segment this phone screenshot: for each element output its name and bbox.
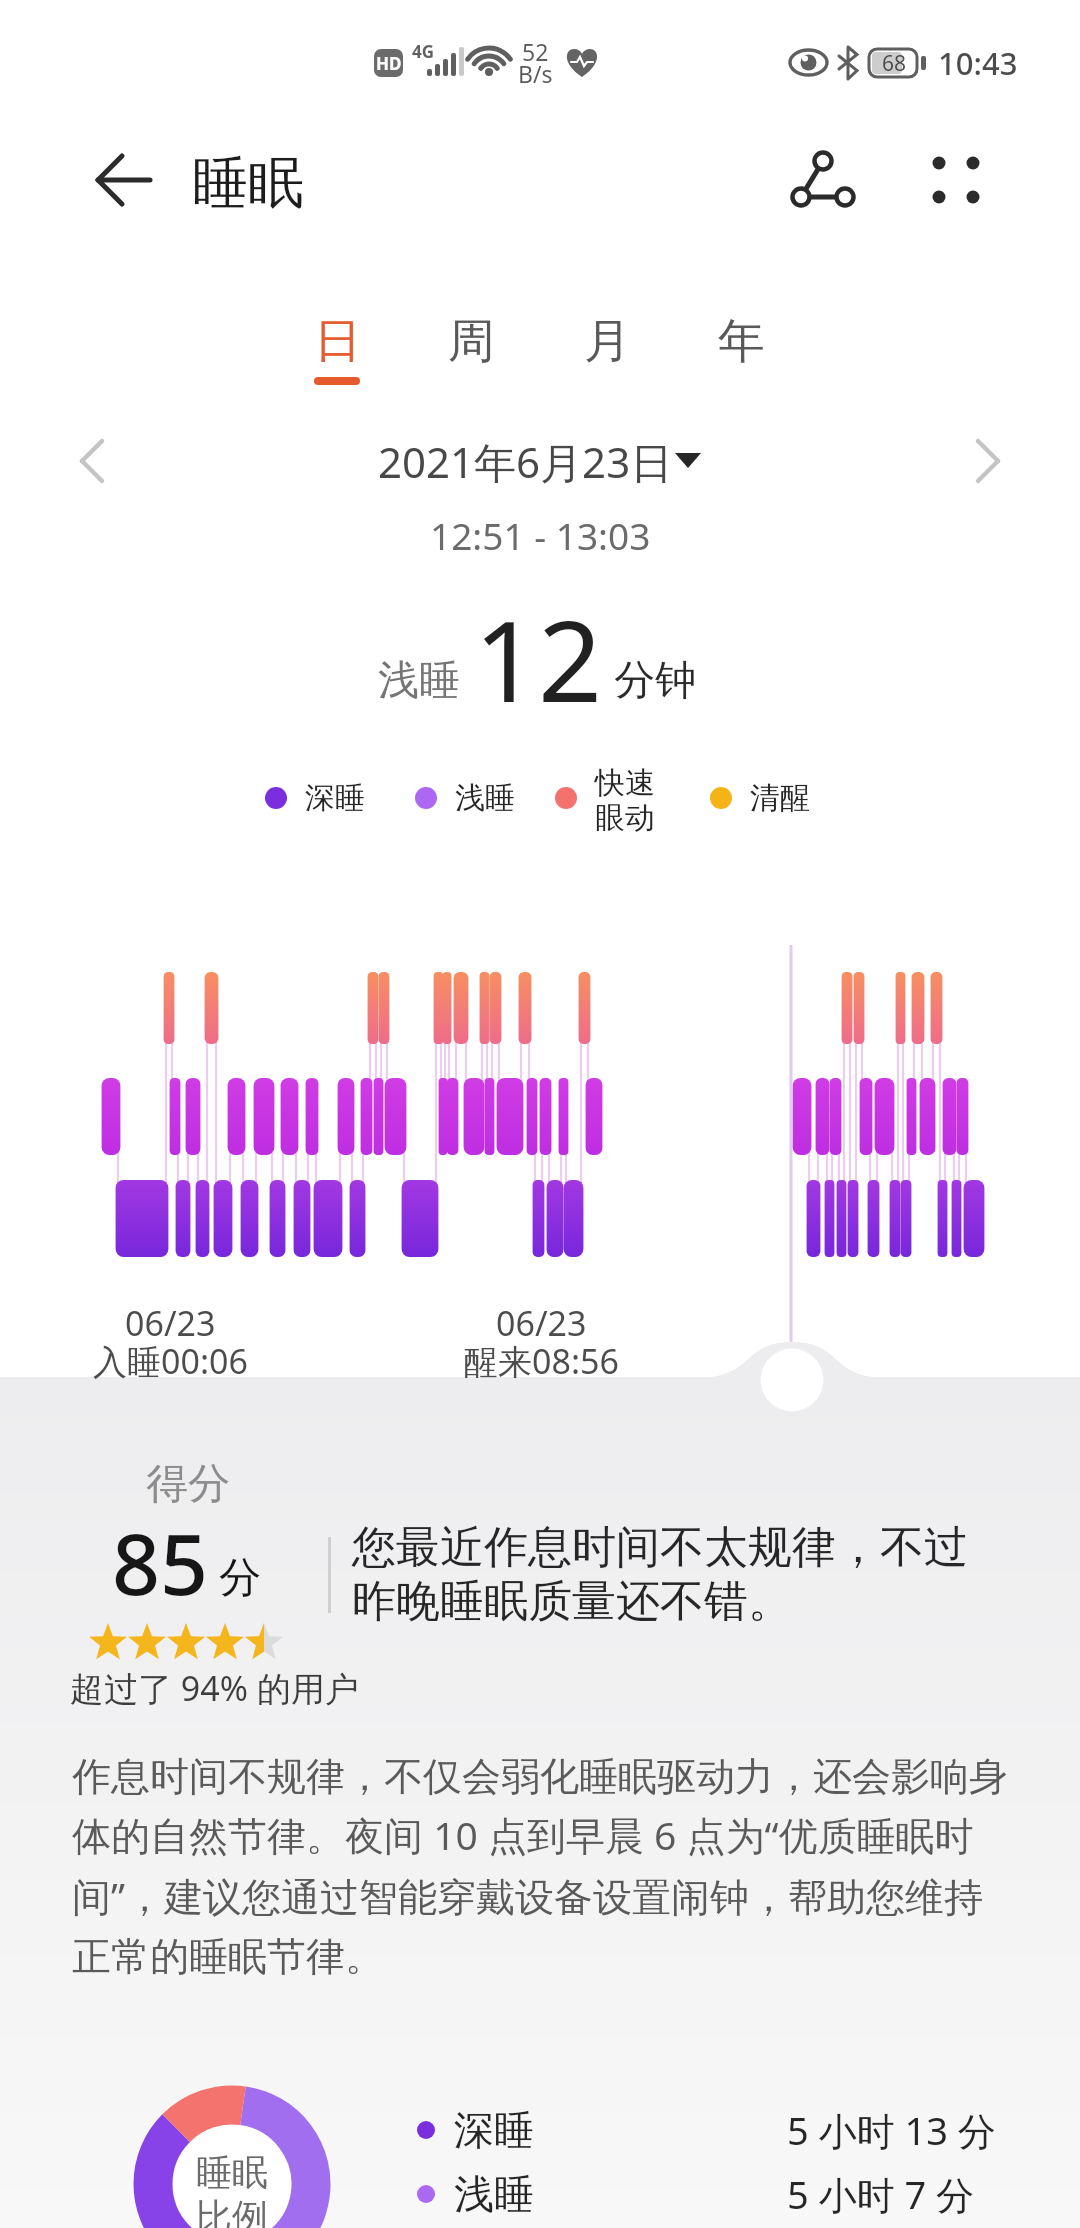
staticText: 日 [314, 312, 361, 371]
staticText: 5 小时 13 分 [787, 2104, 996, 2156]
staticText: 浅睡 [454, 2169, 534, 2219]
staticText: 月 [584, 312, 631, 371]
staticText: 5 小时 7 分 [787, 2168, 975, 2220]
staticText: 入睡00:06 [93, 1338, 248, 1384]
staticText: 醒来08:56 [464, 1338, 619, 1384]
staticText: 52 [522, 36, 549, 62]
button[interactable]: 月 [567, 310, 647, 372]
staticText: 分钟 [614, 655, 696, 707]
staticText: 分 [219, 1552, 261, 1605]
button[interactable]: 周 [431, 310, 511, 372]
staticText: 4G [412, 40, 435, 62]
staticText: 深睡 [454, 2105, 534, 2155]
staticText: 浅睡 [455, 779, 515, 817]
staticText: 10:43 [938, 42, 1018, 84]
staticText: 超过了 94% 的用户 [70, 1665, 359, 1711]
button[interactable]: 日 [297, 310, 377, 372]
button[interactable] [915, 140, 1010, 225]
staticText: 06/23 [125, 1300, 216, 1346]
button[interactable] [775, 140, 870, 225]
button[interactable] [60, 425, 124, 497]
staticText: 2021年6月23日 [378, 433, 673, 490]
staticText: 85 [112, 1505, 209, 1617]
staticText: 清醒 [750, 779, 810, 817]
staticText: 快速 眼动 [595, 764, 655, 837]
staticText: 得分 [146, 1458, 230, 1511]
staticText: 12:51 - 13:03 [430, 510, 651, 560]
staticText: 68 [882, 49, 907, 77]
button[interactable]: 2021年6月23日 [345, 432, 705, 490]
staticText: 周 [448, 312, 495, 371]
staticText: HD [376, 52, 402, 75]
staticText: 深睡 [305, 779, 365, 817]
staticText: 睡眠 [192, 148, 304, 212]
staticText: 您最近作息时间不太规律，不过 昨晚睡眠质量还不错。 [352, 1520, 968, 1629]
staticText: 睡眠 比例 [196, 2150, 268, 2228]
staticText: 12 [474, 582, 603, 727]
staticText: 浅睡 [378, 655, 460, 707]
button[interactable]: 年 [701, 310, 781, 372]
button[interactable] [956, 425, 1020, 497]
button[interactable] [75, 140, 170, 225]
staticText: 06/23 [496, 1300, 587, 1346]
staticText: 年 [718, 312, 765, 371]
staticText: 作息时间不规律，不仅会弱化睡眠驱动力，还会影响身 体的自然节律。夜间 10 点到… [72, 1752, 1008, 1982]
staticText: B/s [518, 58, 553, 84]
